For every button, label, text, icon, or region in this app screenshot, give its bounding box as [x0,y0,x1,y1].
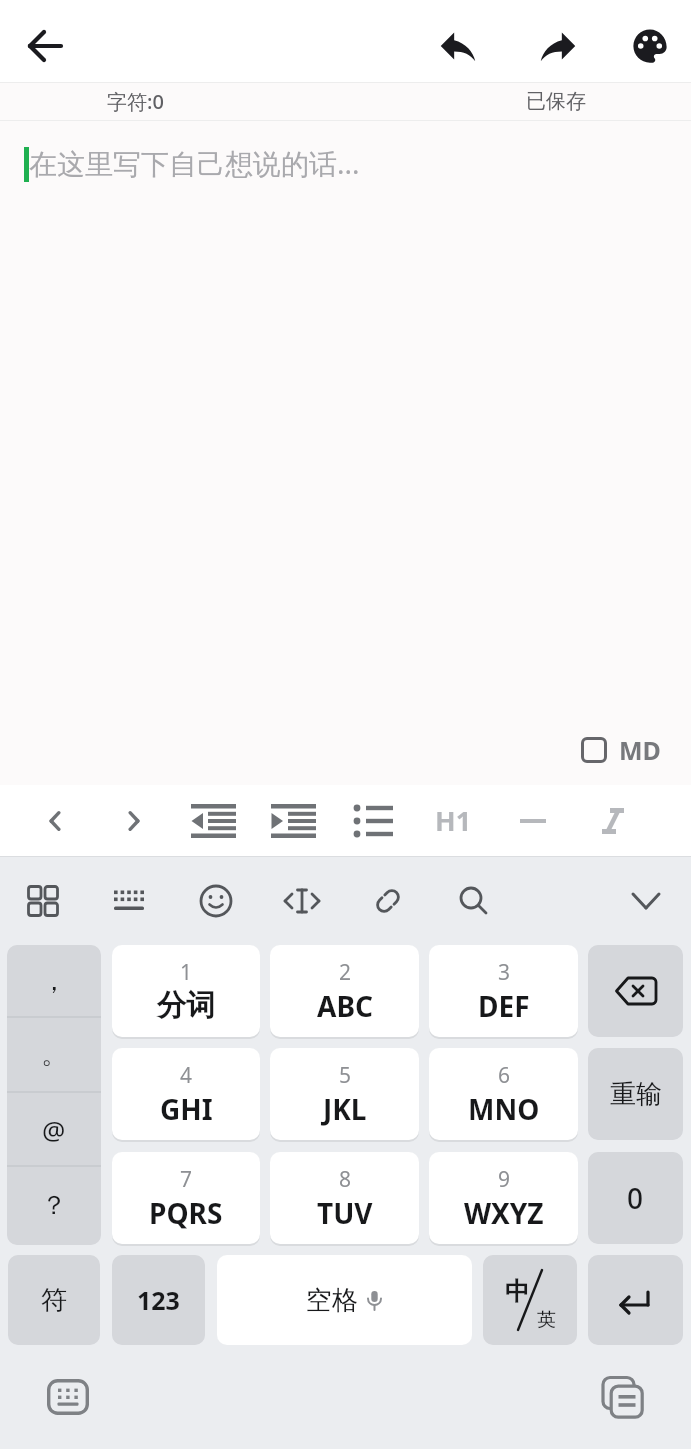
staticText: 5 [339,1061,352,1090]
button[interactable]: 。 [7,1017,101,1092]
button[interactable] [364,877,412,925]
button[interactable] [278,877,326,925]
staticText: JKL [323,1090,367,1128]
button[interactable]: 0 [588,1152,683,1244]
button[interactable] [434,22,482,70]
staticText: ， [41,965,67,998]
staticText: TUV [317,1194,373,1232]
staticText: 7 [180,1165,193,1194]
staticText: WXYZ [464,1194,544,1232]
staticText: 空格 [306,1284,358,1317]
staticText: H1 [435,802,472,839]
staticText: 2 [339,958,352,987]
staticText: 英 [537,1308,556,1332]
button[interactable] [21,22,69,70]
button[interactable] [598,1373,646,1421]
button[interactable] [19,877,67,925]
staticText: 已保存 [526,89,586,114]
button[interactable]: ？ [7,1166,101,1245]
button[interactable]: 中 [483,1255,577,1345]
button[interactable]: 符 [8,1255,100,1345]
staticText: 。 [41,1038,67,1071]
button[interactable] [106,877,154,925]
staticText: 重输 [610,1078,662,1111]
button[interactable] [626,22,674,70]
staticText: 分词 [157,987,215,1024]
staticText: ABC [317,987,373,1025]
staticText: 6 [498,1061,511,1090]
button[interactable]: 9 [429,1152,578,1244]
staticText: 4 [180,1061,193,1090]
staticText: 8 [339,1165,352,1194]
staticText: 符 [41,1284,67,1317]
button[interactable] [15,785,94,856]
button[interactable]: 7 [112,1152,260,1244]
button[interactable] [333,785,413,856]
button[interactable] [94,785,173,856]
button[interactable] [573,785,653,856]
staticText: 字符:0 [107,88,164,115]
staticText: ？ [41,1189,67,1222]
button[interactable]: 6 [429,1048,578,1140]
button[interactable]: MD [581,733,661,767]
button[interactable]: 2 [270,945,419,1037]
staticText: 中 [505,1276,530,1307]
button[interactable] [44,1373,92,1421]
staticText: 3 [498,958,511,987]
button[interactable] [534,22,582,70]
button[interactable]: H1 [413,785,493,856]
button[interactable] [493,785,573,856]
button[interactable] [192,877,240,925]
button[interactable]: 空格 [217,1255,472,1345]
staticText: DEF [478,987,530,1025]
button[interactable] [622,877,670,925]
button[interactable]: 123 [112,1255,205,1345]
staticText: MNO [468,1090,540,1128]
button[interactable]: ， [7,945,101,1017]
staticText: MD [619,733,661,767]
button[interactable] [588,945,683,1037]
button[interactable]: @ [7,1092,101,1166]
button[interactable] [588,1255,683,1345]
staticText: GHI [160,1090,213,1128]
staticText: 在这里写下自己想说的话... [29,144,360,182]
button[interactable]: 8 [270,1152,419,1244]
button[interactable]: 3 [429,945,578,1037]
button[interactable] [450,877,498,925]
staticText: @ [42,1112,66,1147]
staticText: 0 [627,1179,644,1217]
button[interactable]: 重输 [588,1048,683,1140]
button[interactable]: 5 [270,1048,419,1140]
button[interactable]: 1 [112,945,260,1037]
staticText: 1 [180,958,193,987]
staticText: 9 [498,1165,511,1194]
button[interactable] [253,785,333,856]
staticText: 123 [137,1283,180,1317]
button[interactable] [173,785,253,856]
staticText: PQRS [149,1194,223,1232]
button[interactable]: 4 [112,1048,260,1140]
